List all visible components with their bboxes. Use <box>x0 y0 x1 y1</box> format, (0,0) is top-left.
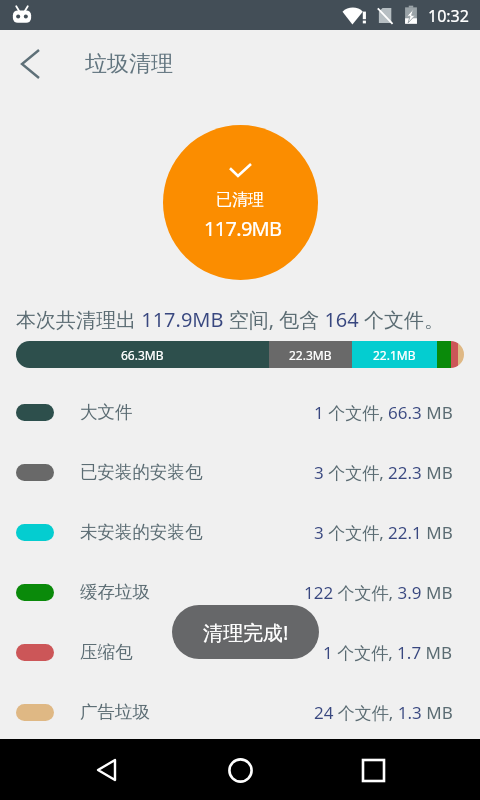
staticText: 1 个文件, 1.7 MB <box>323 641 453 664</box>
staticText: 10:32 <box>428 5 469 27</box>
staticText: 缓存垃圾 <box>80 581 150 603</box>
button[interactable]: Home <box>216 746 264 794</box>
button[interactable]: 广告垃圾 <box>0 682 480 742</box>
staticText: 1 个文件, 66.3 MB <box>314 401 453 424</box>
staticText: 已安装的安装包 <box>80 461 203 483</box>
button[interactable]: 大文件 <box>0 382 480 442</box>
staticText: 已清理 <box>216 190 264 210</box>
button[interactable]: Back <box>6 40 54 88</box>
button[interactable]: Back <box>82 746 130 794</box>
staticText: 大文件 <box>80 401 133 423</box>
staticText: 24 个文件, 1.3 MB <box>314 701 453 724</box>
staticText: 未安装的安装包 <box>80 521 203 543</box>
staticText: 117.9MB <box>204 215 282 242</box>
staticText: 22.3MB <box>289 347 332 363</box>
staticText: 3 个文件, 22.1 MB <box>314 521 453 544</box>
staticText: 垃圾清理 <box>85 50 173 78</box>
button[interactable]: 压缩包 <box>0 622 480 682</box>
staticText: 清理完成! <box>203 619 289 646</box>
button[interactable]: 缓存垃圾 <box>0 562 480 622</box>
staticText: 本次共清理出 117.9MB 空间, 包含 164 个文件。 <box>16 306 444 333</box>
staticText: 22.1MB <box>373 347 416 363</box>
staticText: 广告垃圾 <box>80 701 150 723</box>
button[interactable]: 已安装的安装包 <box>0 442 480 502</box>
button[interactable]: Recent apps <box>349 746 397 794</box>
staticText: 3 个文件, 22.3 MB <box>314 461 453 484</box>
staticText: 压缩包 <box>80 641 133 663</box>
staticText: 66.3MB <box>121 347 164 363</box>
button[interactable]: 未安装的安装包 <box>0 502 480 562</box>
staticText: 122 个文件, 3.9 MB <box>304 581 453 604</box>
